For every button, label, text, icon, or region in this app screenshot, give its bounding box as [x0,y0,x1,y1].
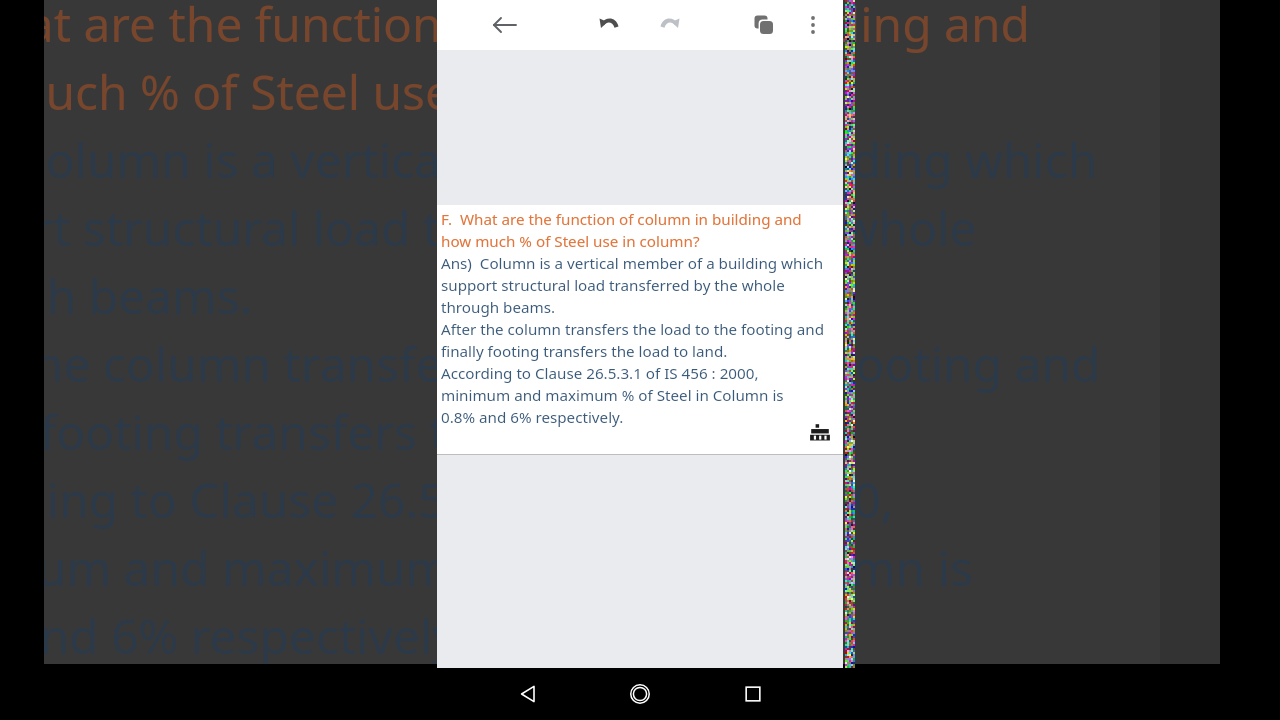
staticText: minimum and maximum % of Steel in Column… [0,535,973,600]
staticText: F. What are the function of column in bu… [0,0,1030,56]
staticText: After the column transfers the load to t… [0,331,1101,396]
staticText: F. What are the function of column in bu… [441,209,802,230]
staticText: through beams. [0,263,253,328]
staticText: minimum and maximum % of Steel in Column… [441,385,784,406]
button[interactable]: Text [712,672,764,720]
staticText: how much % of Steel use in column? [441,231,700,252]
button[interactable]: Recents [731,672,775,716]
staticText: through beams. [441,297,556,318]
staticText: support structural load transferred by t… [441,275,843,297]
staticText: finally footing transfers the load to la… [0,399,796,464]
button[interactable]: Shapes [581,672,633,720]
staticText: how much % of Steel use in column? [0,59,708,124]
staticText: 0.8% and 6% respectively. [0,603,468,668]
staticText: According to Clause 26.5.3.1 of IS 456 :… [0,467,894,532]
staticText: Ans) Column is a vertical member of a bu… [441,253,824,274]
button[interactable]: Back [506,672,550,716]
staticText: finally footing transfers the load to la… [441,341,728,362]
button[interactable]: Undo [586,1,634,49]
button[interactable]: Eraser [647,672,699,720]
button[interactable]: Redo [645,1,693,49]
button[interactable]: More options [789,1,837,49]
button[interactable]: Layers [740,1,788,49]
staticText: According to Clause 26.5.3.1 of IS 456 :… [441,363,759,384]
staticText: After the column transfers the load to t… [441,319,825,340]
button[interactable]: Home [618,672,662,716]
button[interactable]: F. What are the function of column in bu… [437,205,843,454]
staticText: 0.8% and 6% respectively. [441,407,624,428]
staticText: support structural load transferred by t… [0,195,1160,263]
button[interactable]: Pen [516,672,568,720]
staticText: Ans) Column is a vertical member of a bu… [0,127,1098,192]
button[interactable]: Back [481,1,529,49]
